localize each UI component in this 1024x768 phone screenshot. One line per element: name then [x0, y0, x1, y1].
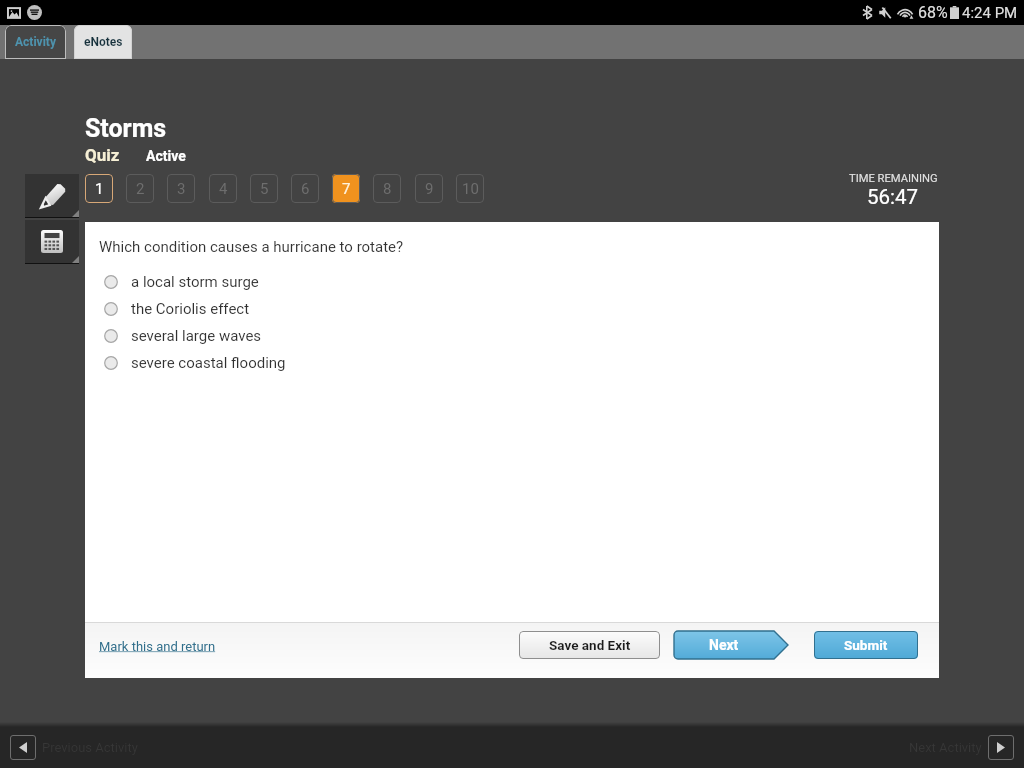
staticText: Which condition causes a hurricane to ro… [99, 238, 404, 256]
staticText: 2 [136, 180, 145, 198]
staticText: eNotes [84, 35, 123, 49]
button[interactable]: 5 [250, 174, 278, 203]
staticText: 68% [918, 3, 948, 22]
staticText: 56:47 [867, 185, 919, 209]
button[interactable]: the Coriolis effect [85, 295, 939, 322]
button[interactable]: Activity [5, 25, 66, 59]
staticText: 10 [462, 180, 479, 198]
staticText: 9 [425, 180, 434, 198]
staticText: Storms [85, 114, 167, 143]
staticText: 7 [342, 180, 351, 198]
button[interactable]: 2 [126, 174, 154, 203]
button[interactable]: several large waves [85, 322, 939, 349]
button[interactable]: Next [674, 631, 788, 659]
button[interactable]: 10 [456, 174, 484, 203]
button[interactable]: 8 [373, 174, 401, 203]
button[interactable]: Mark this and return [99, 639, 216, 654]
staticText: Next Activity [909, 740, 982, 755]
button[interactable]: 1 [85, 174, 113, 203]
button[interactable]: Highlighter [25, 174, 79, 217]
staticText: the Coriolis effect [131, 300, 250, 318]
staticText: 8 [383, 180, 392, 198]
staticText: TIME REMAINING [849, 172, 938, 185]
staticText: Submit [844, 637, 888, 653]
staticText: Next [709, 637, 739, 653]
button[interactable]: a local storm surge [85, 268, 939, 295]
staticText: Mark this and return [99, 639, 216, 654]
button[interactable]: 4 [209, 174, 237, 203]
button[interactable]: Save and Exit [519, 631, 660, 659]
staticText: Quiz [85, 145, 120, 165]
button[interactable]: severe coastal flooding [85, 349, 939, 376]
button[interactable]: Previous Activity [10, 735, 36, 760]
button[interactable]: 6 [291, 174, 319, 203]
staticText: 4 [219, 180, 228, 198]
button[interactable]: Calculator [25, 220, 79, 263]
staticText: 4:24 PM [962, 4, 1018, 22]
staticText: Activity [15, 35, 56, 49]
staticText: 5 [260, 180, 269, 198]
staticText: Save and Exit [549, 637, 631, 653]
staticText: severe coastal flooding [131, 354, 286, 372]
staticText: 3 [177, 180, 186, 198]
button[interactable]: Next Activity [988, 735, 1014, 760]
staticText: Previous Activity [42, 740, 138, 755]
button[interactable]: eNotes [74, 25, 132, 59]
button[interactable]: 7 [332, 174, 360, 203]
staticText: several large waves [131, 327, 262, 345]
staticText: 1 [95, 180, 104, 198]
staticText: 6 [301, 180, 310, 198]
button[interactable]: 9 [415, 174, 443, 203]
staticText: a local storm surge [131, 273, 259, 291]
staticText: Active [146, 148, 186, 164]
button[interactable]: 3 [167, 174, 195, 203]
button[interactable]: Submit [814, 631, 918, 659]
